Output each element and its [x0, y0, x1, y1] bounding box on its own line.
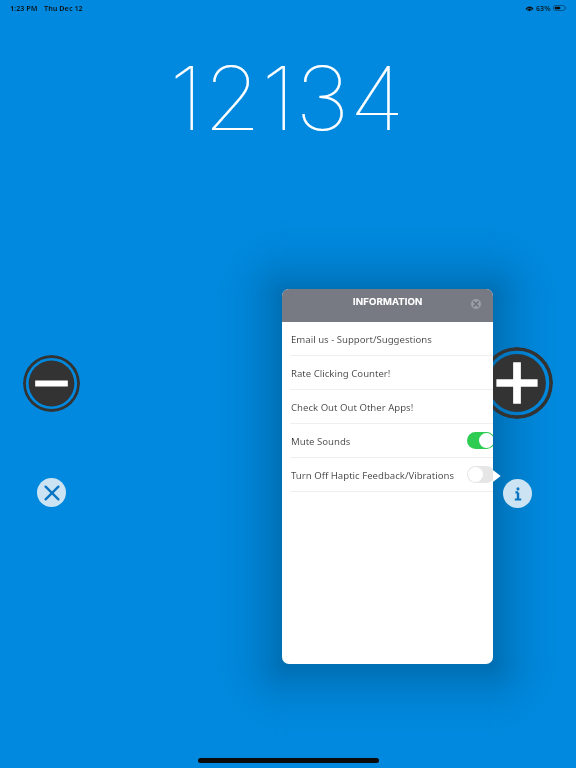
button[interactable]: Mute Sounds	[282, 424, 493, 457]
button[interactable]: Email us - Support/Suggestions	[282, 322, 493, 355]
button[interactable]: Information	[503, 479, 532, 508]
staticText: Mute Sounds	[291, 435, 351, 448]
button[interactable]: Increment	[481, 347, 553, 419]
button[interactable]: Turn Off Haptic Feedback/Vibrations	[282, 458, 493, 491]
button[interactable]	[467, 432, 493, 449]
button[interactable]: Close	[466, 294, 485, 313]
button[interactable]: Rate Clicking Counter!	[282, 356, 493, 389]
button[interactable]: Decrement	[23, 355, 80, 412]
button[interactable]: Check Out Out Other Apps!	[282, 390, 493, 423]
staticText: Email us - Support/Suggestions	[291, 333, 432, 346]
staticText: Rate Clicking Counter!	[291, 367, 391, 380]
button[interactable]: Reset	[37, 478, 66, 507]
staticText: 63%	[536, 3, 551, 13]
staticText: INFORMATION	[353, 296, 423, 308]
staticText: Turn Off Haptic Feedback/Vibrations	[291, 469, 455, 482]
staticText: 1:23 PM	[10, 3, 38, 13]
button[interactable]	[467, 466, 493, 483]
staticText: 12134	[0, 45, 575, 152]
staticText: Thu Dec 12	[44, 3, 83, 13]
staticText: Check Out Out Other Apps!	[291, 401, 414, 414]
